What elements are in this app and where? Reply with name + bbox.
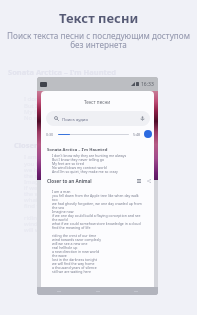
staticText: 16:33 [141,81,154,88]
staticText: Поиск аудио [62,116,89,122]
staticText: Текст песни [84,99,111,105]
staticText: 0:30 [46,132,54,137]
staticText: I don't know why they are hunting me But… [24,95,131,122]
staticText: Closer to an Animal [47,178,92,184]
staticText: 5:48 [133,132,141,137]
staticText: I am a man you fell down from the Apple … [24,153,119,234]
staticText: Текст песни [59,9,139,27]
staticText: Sonata Arctica – I'm Haunted [47,147,108,153]
button[interactable]: Поиск аудио [46,111,150,126]
button[interactable]: Play [144,130,152,138]
staticText: Поиск текста песни с последующим доступо… [7,30,190,50]
staticText: Sonata Arctica – I'm Haunted [8,67,117,77]
staticText: I don't know why they are hunting me alw… [52,153,127,174]
other: Voice search [140,116,145,121]
staticText: I am a man you fell down from the Apple … [52,189,142,274]
button[interactable]: Options [137,179,141,183]
button[interactable]: Share [147,179,151,183]
staticText: Closer to an Animal [14,140,87,150]
